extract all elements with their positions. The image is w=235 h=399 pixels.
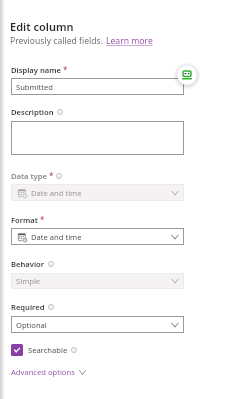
- staticText: Required: [11, 302, 45, 312]
- button[interactable]: Optional: [11, 316, 184, 333]
- staticText: Advanced options: [11, 367, 75, 377]
- staticText: Format: [11, 215, 38, 225]
- button[interactable]: Submitted: [11, 78, 184, 95]
- staticText: Behavior: [11, 259, 45, 269]
- button[interactable]: Simple: [11, 273, 184, 289]
- staticText: *: [49, 170, 54, 181]
- staticText: Simple: [16, 276, 41, 286]
- button[interactable]: [11, 121, 184, 155]
- staticText: Description: [11, 107, 54, 117]
- staticText: Data type: [11, 171, 47, 181]
- staticText: Display name: [11, 65, 61, 75]
- button[interactable]: Date and time: [11, 228, 184, 245]
- staticText: Date and time: [31, 232, 82, 242]
- staticText: *: [63, 64, 68, 75]
- staticText: Date and time: [31, 188, 82, 198]
- button[interactable]: Date and time: [11, 184, 184, 201]
- staticText: Searchable: [28, 345, 68, 355]
- staticText: Edit column: [10, 19, 74, 34]
- staticText: Submitted: [16, 82, 54, 92]
- staticText: Previously called fields.: [10, 35, 106, 47]
- button[interactable]: Advanced options: [11, 367, 86, 377]
- button[interactable]: Learn more: [106, 35, 153, 47]
- staticText: *: [40, 214, 45, 225]
- staticText: Optional: [16, 320, 47, 330]
- button[interactable]: Copilot: [176, 64, 198, 86]
- button[interactable]: Searchable: [11, 344, 77, 356]
